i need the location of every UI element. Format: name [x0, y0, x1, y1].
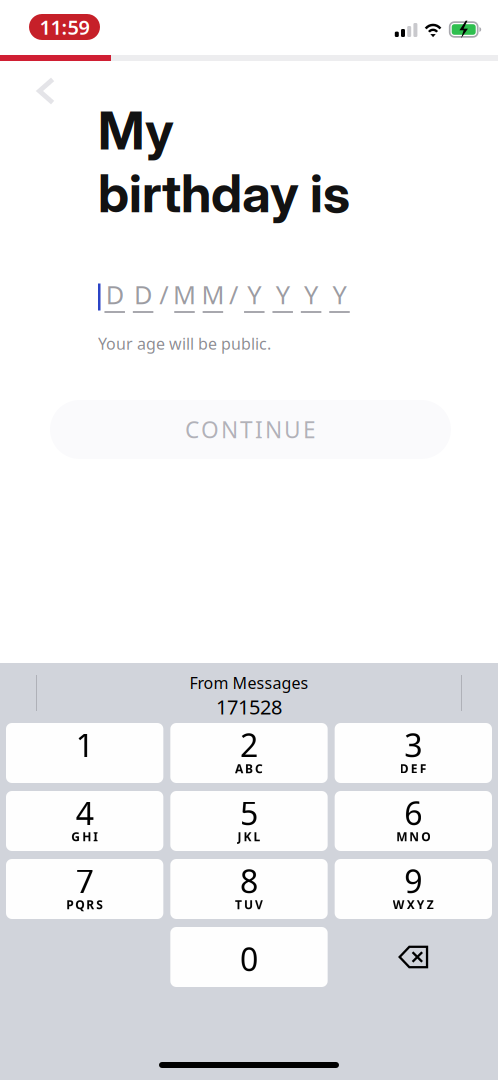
staticText: 6: [404, 792, 422, 834]
staticText: Y: [276, 278, 290, 311]
button[interactable]: 6: [335, 791, 492, 851]
staticText: Your age will be public.: [98, 333, 271, 354]
button[interactable]: Delete: [335, 927, 492, 987]
staticText: 4: [76, 792, 94, 834]
button[interactable]: 0: [170, 927, 328, 987]
staticText: C O N T I N U E: [185, 414, 316, 444]
button[interactable]: 2: [170, 723, 328, 783]
staticText: Y: [247, 278, 261, 311]
staticText: D: [106, 278, 124, 311]
staticText: 7: [76, 860, 94, 902]
staticText: P Q R S: [66, 897, 103, 913]
staticText: A B C: [235, 761, 263, 777]
button[interactable]: 7: [6, 859, 163, 919]
staticText: Y: [304, 278, 318, 311]
staticText: M: [173, 278, 196, 311]
staticText: /: [159, 278, 168, 311]
staticText: M: [201, 278, 224, 311]
staticText: J K L: [237, 829, 260, 845]
button[interactable]: 3: [335, 723, 492, 783]
button[interactable]: C O N T I N U E: [50, 400, 451, 459]
button[interactable]: 5: [170, 791, 328, 851]
staticText: 5: [240, 792, 258, 834]
button[interactable]: 9: [335, 859, 492, 919]
staticText: /: [229, 278, 238, 311]
button[interactable]: 1: [6, 723, 163, 783]
button[interactable]: Back: [0, 61, 72, 112]
staticText: My birthday is: [98, 99, 350, 225]
staticText: 0: [240, 938, 258, 980]
staticText: 9: [404, 860, 422, 902]
staticText: D E F: [400, 761, 427, 777]
staticText: D: [134, 278, 152, 311]
staticText: 171528: [216, 693, 282, 720]
button[interactable]: 8: [170, 859, 328, 919]
staticText: 3: [404, 724, 422, 766]
staticText: W X Y Z: [393, 897, 434, 913]
staticText: T U V: [235, 897, 263, 913]
staticText: From Messages: [189, 672, 308, 693]
staticText: 8: [240, 860, 258, 902]
button[interactable]: 4: [6, 791, 163, 851]
staticText: 1: [76, 724, 94, 766]
staticText: M N O: [396, 829, 430, 845]
staticText: 11:59: [39, 14, 89, 40]
staticText: 2: [240, 724, 258, 766]
staticText: Y: [332, 278, 346, 311]
staticText: G H I: [71, 829, 98, 845]
